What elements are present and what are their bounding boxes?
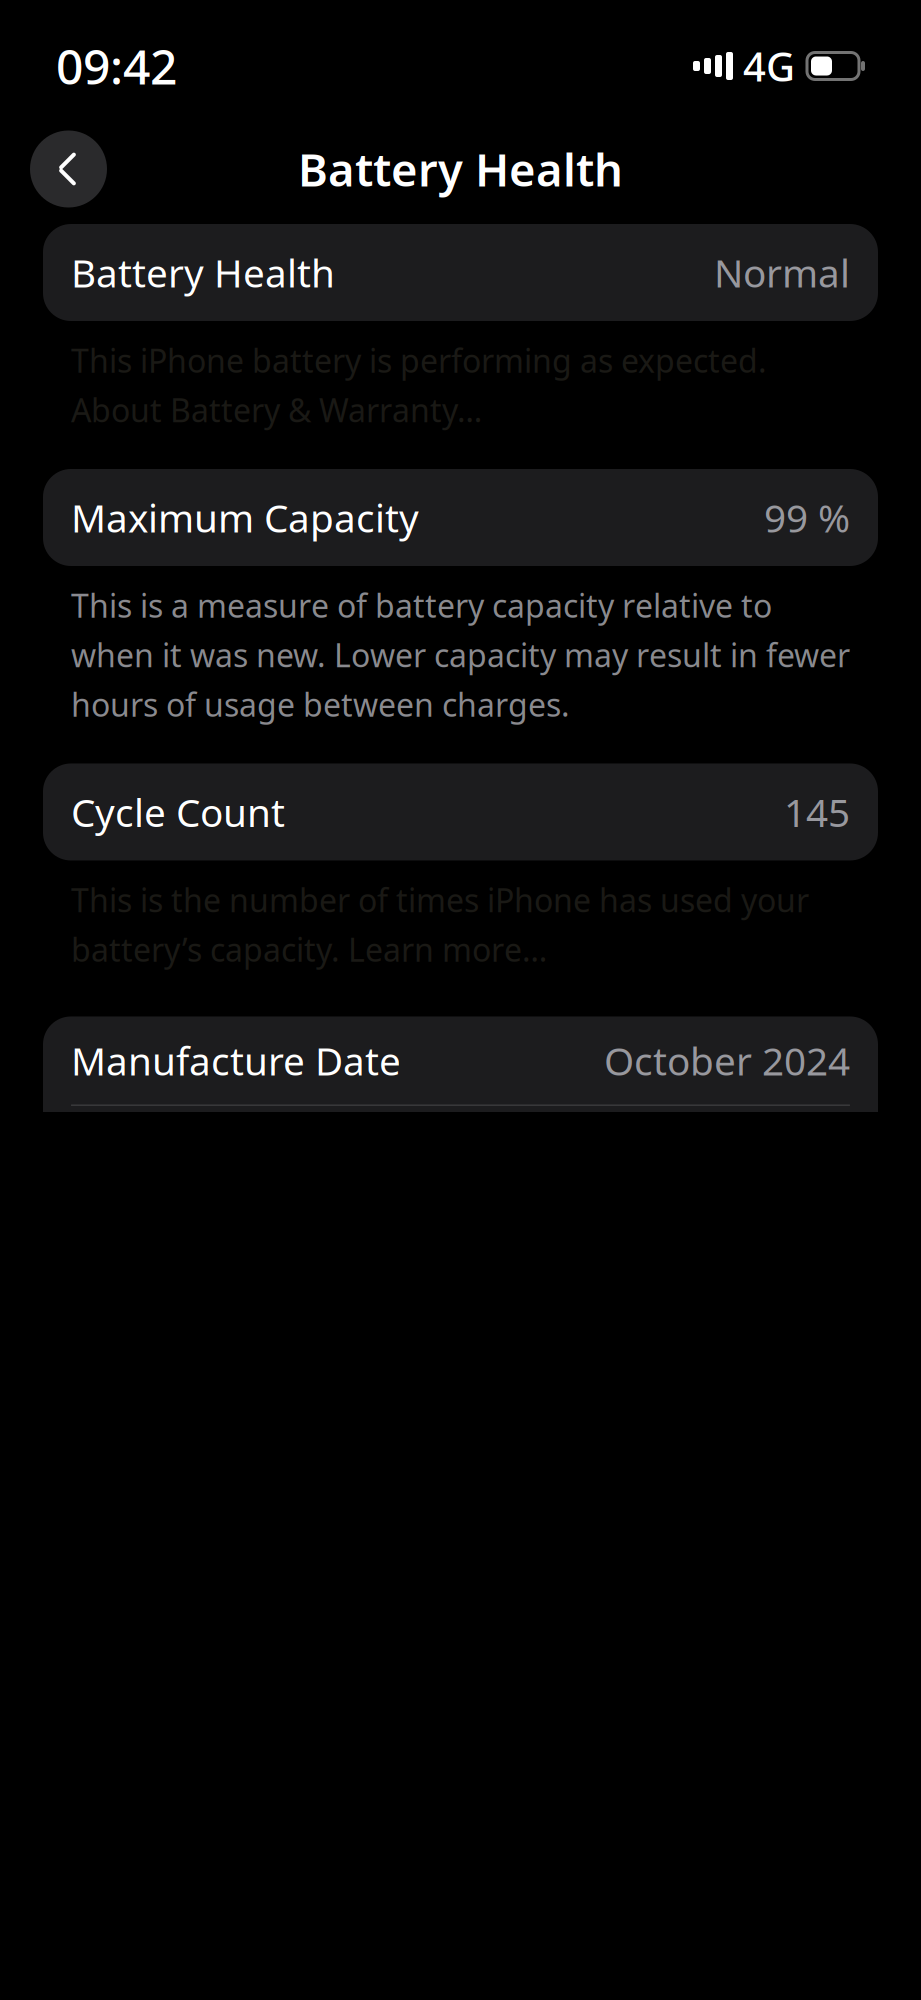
- staticText: Battery Health: [71, 247, 335, 298]
- button[interactable]: Back: [30, 130, 107, 207]
- staticText: Cycle Count: [71, 786, 285, 838]
- button[interactable]: Maximum Capacity: [43, 469, 878, 566]
- button[interactable]: Cycle Count: [43, 763, 878, 860]
- staticText: 99 %: [764, 492, 850, 543]
- button[interactable]: This iPhone battery is performing as exp…: [43, 339, 878, 431]
- staticText: This is the number of times iPhone has u…: [71, 878, 809, 970]
- button[interactable]: Battery Health: [43, 224, 878, 321]
- staticText: Maximum Capacity: [71, 492, 419, 543]
- staticText: October 2024: [604, 1035, 850, 1086]
- staticText: 4G: [743, 39, 795, 92]
- staticText: Battery Health: [298, 139, 623, 199]
- staticText: Manufacture Date: [71, 1035, 401, 1086]
- staticText: This iPhone battery is performing as exp…: [71, 339, 767, 431]
- staticText: This is a measure of battery capacity re…: [71, 584, 850, 725]
- staticText: 09:42: [56, 34, 177, 98]
- button[interactable]: This is the number of times iPhone has u…: [43, 878, 878, 970]
- button[interactable]: Manufacture Date: [43, 1016, 878, 1104]
- staticText: 145: [784, 786, 850, 838]
- staticText: Normal: [714, 247, 850, 298]
- button[interactable]: First Use: [43, 1106, 878, 1194]
